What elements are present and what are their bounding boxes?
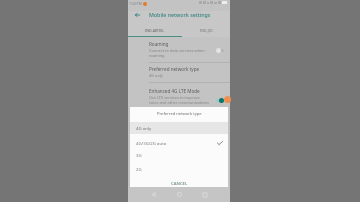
staticText: Mobile network settings [149,11,211,18]
staticText: Use LTE services to improve voice and ot… [149,95,209,112]
button[interactable]: Preferred network type [128,66,230,78]
button[interactable]: IND-AIRTEL [128,23,182,37]
button[interactable]: 3G [130,149,228,161]
button[interactable]: IND-JIO [182,23,230,37]
button[interactable]: Recents [198,188,211,201]
staticText: 3G [136,152,142,158]
staticText: Connect to data services when roaming [149,48,209,59]
staticText: 4G only [149,73,163,78]
staticText: Preferred network type [157,111,202,117]
staticText: 4G only [136,125,152,131]
staticText: IND-AIRTEL [145,28,165,33]
button[interactable]: Enhanced 4G LTE Mode [128,88,230,112]
staticText: 7:34 PM [129,1,142,6]
staticText: Preferred network type [149,66,200,72]
button[interactable]: 4G/3G/2G auto [130,137,228,149]
staticText: CANCEL [171,180,188,186]
staticText: 4G/3G/2G auto [136,140,167,146]
button[interactable]: 2G [130,163,228,175]
button[interactable]: Back [131,9,143,21]
staticText: Roaming [149,41,169,47]
staticText: Enhanced 4G LTE Mode [149,88,200,94]
staticText: 2G [136,166,142,172]
button[interactable]: Home [173,188,186,201]
button[interactable]: CANCEL [167,178,192,188]
button[interactable]: Back [147,188,160,201]
button[interactable]: Roaming [128,41,230,59]
staticText: IND-JIO [200,28,213,33]
button[interactable]: 4G only [130,122,228,134]
